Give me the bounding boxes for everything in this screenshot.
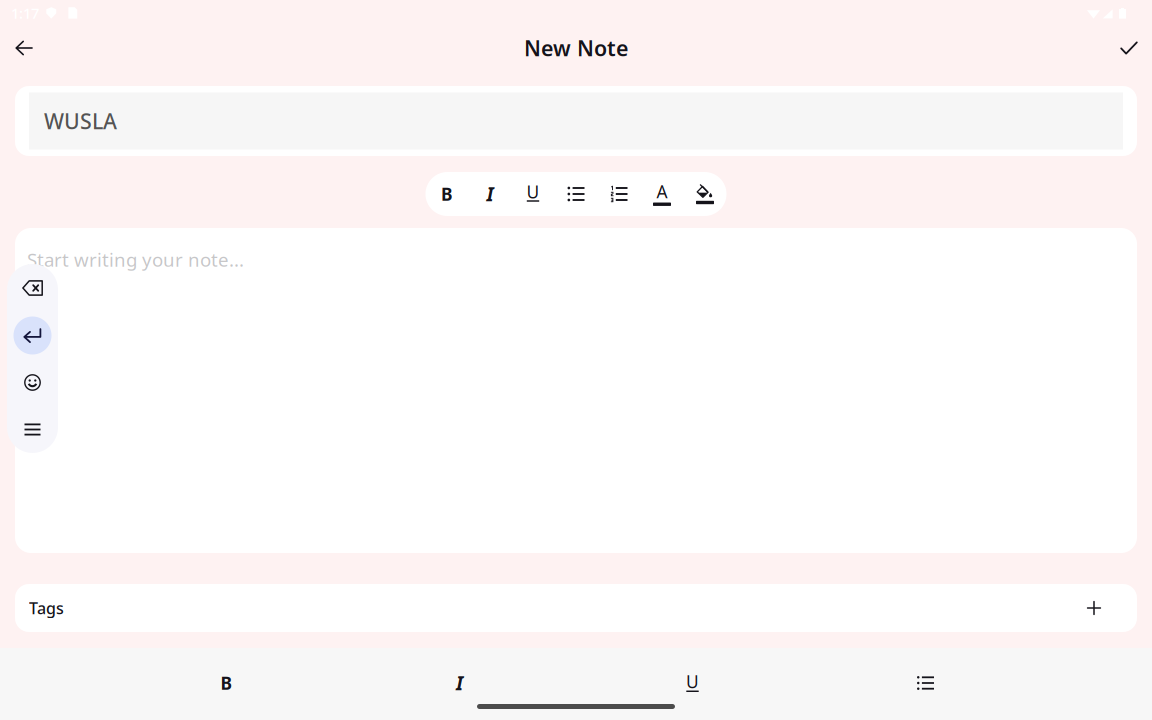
button[interactable]: Bulleted list	[554, 172, 597, 216]
button[interactable]: U	[511, 172, 554, 216]
staticText: WUSLA	[44, 107, 117, 135]
staticText: U	[526, 180, 539, 203]
button[interactable]: I	[468, 172, 511, 216]
staticText: I	[486, 182, 493, 206]
button[interactable]: Done	[1107, 26, 1151, 70]
button[interactable]: Add tag	[1074, 588, 1114, 628]
button[interactable]: List	[809, 660, 1042, 706]
staticText: 1:17	[11, 3, 39, 23]
button[interactable]: Menu	[7, 406, 58, 453]
staticText: B	[220, 671, 232, 694]
button[interactable]: Return	[7, 312, 58, 359]
button[interactable]: Emoji	[7, 359, 58, 406]
staticText: Start writing your note...	[27, 247, 244, 272]
button[interactable]: Back	[2, 26, 46, 70]
button[interactable]: U	[576, 660, 809, 706]
staticText: Tags	[29, 597, 64, 619]
staticText: A	[656, 180, 667, 203]
button[interactable]: Numbered list	[597, 172, 640, 216]
button[interactable]: Backspace	[7, 264, 58, 312]
staticText: New Note	[524, 34, 628, 62]
button[interactable]: Highlight color	[683, 172, 726, 216]
staticText: B	[441, 182, 453, 205]
staticText: U	[686, 670, 699, 693]
staticText: I	[456, 671, 463, 695]
button[interactable]: I	[343, 660, 576, 706]
button[interactable]: B	[110, 660, 343, 706]
button[interactable]: Text color	[640, 172, 683, 216]
button[interactable]: B	[425, 172, 468, 216]
